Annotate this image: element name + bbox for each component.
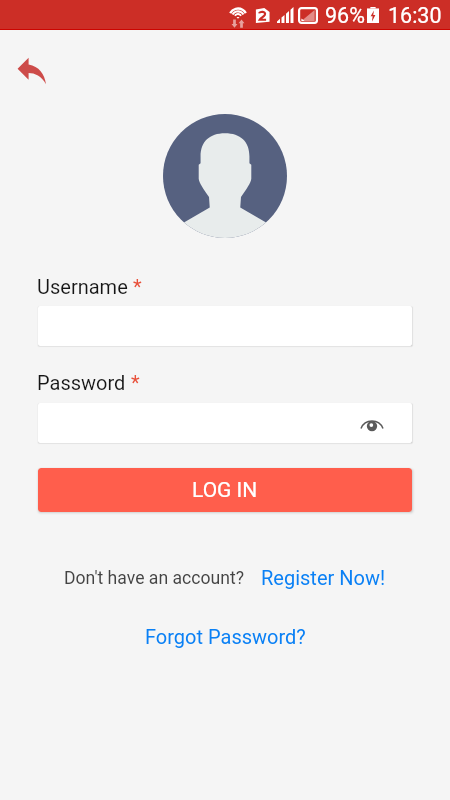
- staticText: 96%: [325, 3, 365, 28]
- button[interactable]: Forgot Password?: [145, 625, 306, 648]
- staticText: *: [126, 371, 140, 394]
- staticText: Forgot Password?: [145, 625, 306, 648]
- staticText: LOG IN: [192, 478, 258, 503]
- button[interactable]: Register Now!: [261, 566, 386, 589]
- staticText: Password: [37, 371, 126, 394]
- button[interactable]: Show password: [38, 403, 412, 443]
- staticText: 16:30: [388, 3, 442, 28]
- staticText: Username: [37, 275, 128, 298]
- button[interactable]: Back: [17, 56, 46, 85]
- staticText: Register Now!: [261, 566, 386, 589]
- button[interactable]: LOG IN: [38, 468, 412, 512]
- staticText: Don't have an account?: [64, 568, 244, 589]
- button[interactable]: Show password: [356, 407, 388, 439]
- staticText: *: [128, 275, 142, 298]
